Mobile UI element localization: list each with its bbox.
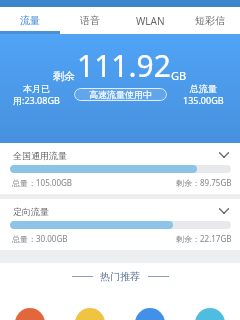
staticText: 热门推荐 <box>100 270 140 282</box>
button[interactable]: 全国通用流量 <box>0 143 240 194</box>
staticText: 本月已 <box>23 83 50 94</box>
button[interactable]: Expand <box>218 149 230 161</box>
button[interactable]: Home <box>135 308 165 320</box>
staticText: 流量 <box>20 14 40 27</box>
button[interactable]: 流量 <box>0 7 60 34</box>
button[interactable]: Expand <box>218 205 230 217</box>
staticText: 总量：30.00GB <box>12 233 68 244</box>
staticText: 总流量 <box>190 83 217 94</box>
staticText: 语音 <box>80 14 100 27</box>
staticText: GB <box>171 68 187 83</box>
button[interactable]: 短彩信 <box>180 7 240 34</box>
staticText: 短彩信 <box>195 14 225 27</box>
button[interactable]: Business hall <box>195 308 225 320</box>
staticText: 定向流量 <box>13 206 49 217</box>
staticText: 剩余：89.75GB <box>176 177 232 188</box>
button[interactable]: 语音 <box>60 7 120 34</box>
button[interactable]: Recharge <box>75 308 105 320</box>
button[interactable]: WLAN <box>120 7 180 34</box>
staticText: 用:23.08GB <box>13 94 60 106</box>
staticText: 135.00GB <box>183 94 224 106</box>
staticText: WLAN <box>136 14 165 28</box>
staticText: 总量：105.00GB <box>12 177 73 188</box>
staticText: 全国通用流量 <box>13 150 67 161</box>
button[interactable]: Flow package <box>15 308 45 320</box>
staticText: 剩余 <box>53 69 75 83</box>
staticText: 剩余：22.17GB <box>176 233 232 244</box>
staticText: 高速流量使用中 <box>89 89 152 100</box>
button[interactable]: 高速流量使用中 <box>74 88 167 101</box>
staticText: 111.92 <box>77 45 171 86</box>
button[interactable]: 定向流量 <box>0 199 240 250</box>
